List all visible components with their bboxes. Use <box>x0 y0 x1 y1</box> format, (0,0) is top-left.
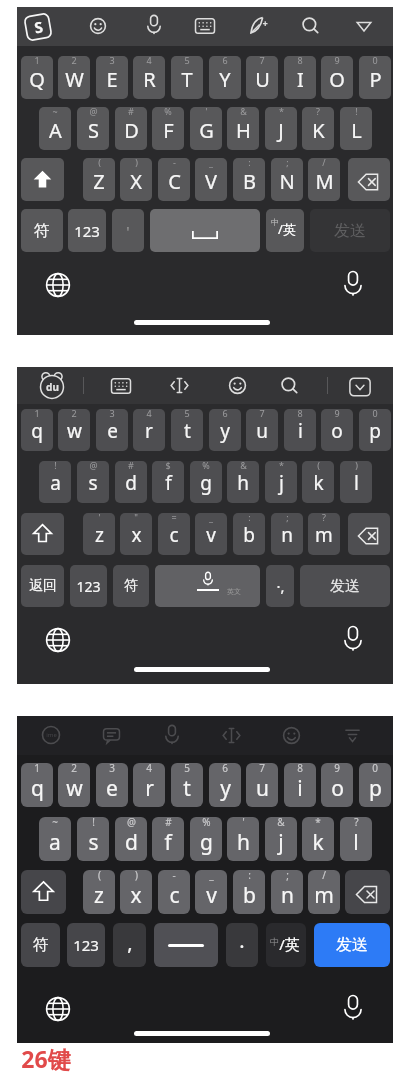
button[interactable]: 0 <box>359 763 391 807</box>
button[interactable]: 2 <box>58 409 90 451</box>
button[interactable]: 0 <box>359 56 391 99</box>
button[interactable] <box>21 870 66 914</box>
button[interactable]: 发送 <box>300 565 390 607</box>
button[interactable]: @ <box>115 817 147 861</box>
button[interactable]: % <box>190 817 222 861</box>
button[interactable]: % <box>152 107 184 150</box>
button[interactable]: du <box>38 371 66 399</box>
button[interactable]: 9 <box>321 763 353 807</box>
button[interactable]: _ <box>195 513 227 555</box>
button[interactable]: 123 <box>70 565 107 607</box>
button[interactable] <box>348 158 390 201</box>
button[interactable]: ' <box>227 817 259 861</box>
button[interactable]: : <box>233 158 265 201</box>
button[interactable]: ! <box>340 107 372 150</box>
button[interactable]: & <box>227 461 259 503</box>
button[interactable]: 5 <box>171 409 203 451</box>
button[interactable]: _ <box>195 158 227 201</box>
button[interactable]: " <box>120 513 152 555</box>
button[interactable]: 9 <box>321 56 353 99</box>
button[interactable]: # <box>152 817 184 861</box>
button[interactable]: 中 <box>266 209 304 252</box>
button[interactable]: 6 <box>209 763 241 807</box>
button[interactable]: 4 <box>133 409 165 451</box>
button[interactable]: $ <box>152 461 184 503</box>
button[interactable]: # <box>115 461 147 503</box>
button[interactable]: S <box>22 11 54 43</box>
button[interactable]: # <box>115 107 147 150</box>
button[interactable]: _ <box>195 870 227 914</box>
button[interactable]: ! <box>77 817 109 861</box>
button[interactable]: 3 <box>96 763 128 807</box>
button[interactable]: ~ <box>39 817 71 861</box>
button[interactable]: ; <box>271 513 303 555</box>
button[interactable]: ' <box>112 209 144 252</box>
button[interactable]: = <box>158 513 190 555</box>
button[interactable]: 返回 <box>21 565 64 607</box>
button[interactable]: ( <box>83 870 115 914</box>
button[interactable]: : <box>233 513 265 555</box>
button[interactable]: 5 <box>171 763 203 807</box>
button[interactable]: ? <box>302 107 334 150</box>
button[interactable]: - <box>158 870 190 914</box>
button[interactable]: & <box>227 107 259 150</box>
button[interactable]: % <box>190 461 222 503</box>
button[interactable]: 英文 <box>155 565 260 607</box>
button[interactable]: ) <box>340 461 372 503</box>
button[interactable]: ) <box>120 158 152 201</box>
button[interactable] <box>348 513 390 555</box>
button[interactable]: 7 <box>246 56 278 99</box>
button[interactable]: 3 <box>96 56 128 99</box>
button[interactable]: ' <box>83 513 115 555</box>
button[interactable]: 7 <box>246 763 278 807</box>
button[interactable]: 6 <box>209 409 241 451</box>
button[interactable]: ; <box>271 870 303 914</box>
button[interactable]: ·, <box>266 565 294 607</box>
button[interactable]: ; <box>271 158 303 201</box>
button[interactable]: 7 <box>246 409 278 451</box>
button[interactable]: 2 <box>58 763 90 807</box>
button[interactable]: * <box>302 817 334 861</box>
button[interactable]: 123 <box>67 923 105 967</box>
button[interactable]: 1 <box>21 56 53 99</box>
button[interactable]: ( <box>83 158 115 201</box>
button[interactable]: 9 <box>321 409 353 451</box>
button[interactable]: . <box>226 923 258 967</box>
button[interactable]: 符 <box>21 923 60 967</box>
button[interactable]: * <box>265 107 297 150</box>
button[interactable]: : <box>233 870 265 914</box>
button[interactable]: - <box>158 158 190 201</box>
button[interactable]: @ <box>77 107 109 150</box>
button[interactable]: ime <box>41 725 61 745</box>
button[interactable]: , <box>113 923 146 967</box>
button[interactable]: ~ <box>39 107 71 150</box>
button[interactable]: 2 <box>58 56 90 99</box>
button[interactable]: 发送 <box>314 923 390 967</box>
button[interactable]: 5 <box>171 56 203 99</box>
button[interactable]: / <box>308 870 340 914</box>
button[interactable] <box>150 209 260 252</box>
button[interactable]: ) <box>120 870 152 914</box>
button[interactable] <box>21 513 64 555</box>
button[interactable]: 6 <box>209 56 241 99</box>
button[interactable]: 1 <box>21 409 53 451</box>
button[interactable]: 8 <box>284 409 316 451</box>
button[interactable] <box>21 158 64 201</box>
button[interactable]: 符 <box>113 565 149 607</box>
button[interactable]: ? <box>308 513 340 555</box>
button[interactable]: 4 <box>133 56 165 99</box>
button[interactable]: 0 <box>359 409 391 451</box>
button[interactable]: 符 <box>21 209 63 252</box>
button[interactable]: 3 <box>96 409 128 451</box>
button[interactable]: 1 <box>21 763 53 807</box>
button[interactable]: ' <box>190 107 222 150</box>
button[interactable]: ( <box>302 461 334 503</box>
button[interactable]: 123 <box>68 209 106 252</box>
button[interactable]: / <box>308 158 340 201</box>
button[interactable]: 中 <box>266 923 306 967</box>
button[interactable]: ! <box>39 461 71 503</box>
button[interactable]: 4 <box>133 763 165 807</box>
button[interactable]: @ <box>77 461 109 503</box>
button[interactable]: ? <box>340 817 372 861</box>
button[interactable]: 发送 <box>310 209 390 252</box>
